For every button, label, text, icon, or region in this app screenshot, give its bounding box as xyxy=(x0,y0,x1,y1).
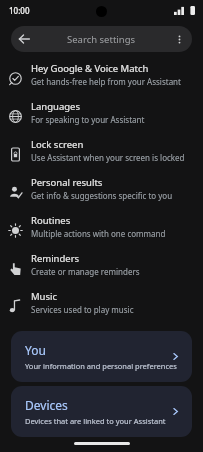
staticText: Search settings xyxy=(67,33,136,46)
staticText: Routines xyxy=(31,214,71,227)
staticText: For speaking to your Assistant xyxy=(31,114,145,125)
button[interactable]: Languages xyxy=(0,100,203,136)
button[interactable]: You xyxy=(11,331,192,382)
staticText: Services used to play music xyxy=(31,304,134,315)
button[interactable]: Lock screen xyxy=(0,138,203,174)
staticText: Your information and personal preference… xyxy=(25,361,177,371)
button[interactable]: Hey Google & Voice Match xyxy=(0,62,203,98)
staticText: Use Assistant when your screen is locked xyxy=(31,152,185,163)
button[interactable]: Personal results xyxy=(0,176,203,212)
staticText: Get info & suggestions specific to you xyxy=(31,190,173,201)
staticText: You xyxy=(25,342,46,358)
staticText: Personal results xyxy=(31,176,103,189)
staticText: Multiple actions with one command xyxy=(31,228,166,239)
button[interactable]: Reminders xyxy=(0,252,203,288)
staticText: Lock screen xyxy=(31,138,84,151)
staticText: Languages xyxy=(31,100,80,113)
button[interactable]: More options xyxy=(166,26,192,52)
staticText: Music xyxy=(31,290,58,303)
button[interactable]: Music xyxy=(0,290,203,326)
button[interactable]: Devices xyxy=(11,386,192,437)
staticText: Devices xyxy=(25,397,68,413)
staticText: Devices that are linked to your Assistan… xyxy=(25,416,166,426)
button[interactable]: Routines xyxy=(0,214,203,250)
staticText: Create or manage reminders xyxy=(31,266,140,277)
staticText: Hey Google & Voice Match xyxy=(31,62,149,75)
button[interactable]: Back xyxy=(11,26,37,52)
staticText: Reminders xyxy=(31,252,80,265)
staticText: Get hands-free help from your Assistant xyxy=(31,76,181,87)
staticText: 10:00 xyxy=(9,5,30,16)
